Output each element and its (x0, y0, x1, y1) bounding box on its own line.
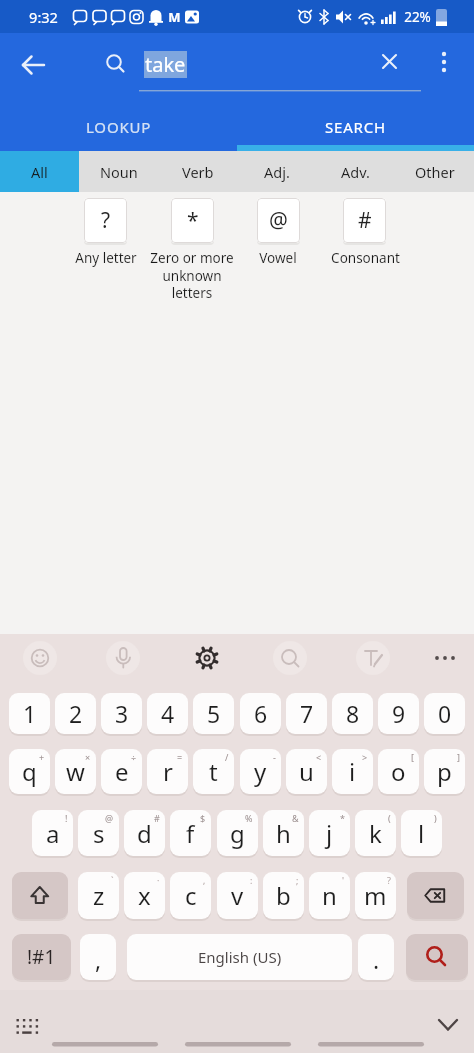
button[interactable]: English (US) (127, 934, 352, 980)
button[interactable]: y (240, 749, 281, 794)
staticText: 9:32 (29, 7, 58, 27)
staticText: SEARCH (325, 117, 386, 137)
staticText: + (39, 751, 45, 763)
button[interactable]: l (401, 810, 442, 856)
staticText: b (276, 879, 291, 912)
button[interactable]: m (355, 872, 396, 919)
staticText: e (115, 755, 129, 788)
staticText: x (138, 879, 151, 912)
button[interactable]: j (309, 810, 350, 856)
button[interactable] (351, 636, 395, 680)
button[interactable]: * (171, 198, 214, 243)
button[interactable]: 5 (193, 693, 234, 734)
button[interactable]: z (78, 872, 119, 919)
staticText: h (276, 817, 291, 850)
button[interactable]: p (424, 749, 465, 794)
button[interactable]: w (55, 749, 96, 794)
button[interactable]: u (286, 749, 327, 794)
button[interactable] (425, 40, 469, 84)
staticText: 6 (254, 698, 268, 729)
button[interactable]: take (140, 47, 200, 81)
button[interactable]: 0 (424, 693, 465, 734)
button[interactable]: 3 (101, 693, 142, 734)
button[interactable]: SEARCH (237, 103, 474, 151)
button[interactable]: g (217, 810, 258, 856)
button[interactable]: 9 (378, 693, 419, 734)
button[interactable]: . (358, 934, 394, 980)
staticText: Any letter (75, 249, 137, 267)
button[interactable]: v (217, 872, 258, 919)
button[interactable]: 4 (147, 693, 188, 734)
button[interactable]: b (263, 872, 304, 919)
button[interactable]: x (124, 872, 165, 919)
button[interactable]: @ (257, 198, 300, 243)
staticText: i (349, 755, 356, 788)
button[interactable] (6, 1010, 46, 1042)
button[interactable]: o (378, 749, 419, 794)
button[interactable]: a (32, 810, 73, 856)
staticText: t (209, 755, 218, 788)
button[interactable]: Verb (158, 151, 237, 192)
staticText: ? (101, 206, 111, 235)
button[interactable] (185, 636, 229, 680)
staticText: # (154, 812, 160, 824)
button[interactable]: Adv. (316, 151, 395, 192)
staticText: [ (411, 751, 414, 763)
button[interactable]: i (332, 749, 373, 794)
button[interactable] (406, 934, 468, 980)
button[interactable]: k (355, 810, 396, 856)
staticText: y (254, 755, 267, 788)
button[interactable]: 6 (240, 693, 281, 734)
button[interactable]: 8 (332, 693, 373, 734)
button[interactable]: 1 (9, 693, 50, 734)
button[interactable]: !#1 (12, 934, 71, 980)
button[interactable]: s (78, 810, 119, 856)
button[interactable]: f (170, 810, 211, 856)
staticText: · (157, 874, 160, 886)
staticText: s (93, 817, 105, 850)
button[interactable]: # (343, 198, 386, 243)
staticText: = (177, 751, 183, 763)
button[interactable] (407, 872, 464, 919)
button[interactable] (18, 636, 62, 680)
button[interactable]: ? (84, 198, 127, 243)
button[interactable]: t (193, 749, 234, 794)
button[interactable]: LOOKUP (0, 103, 237, 151)
staticText: p (437, 755, 452, 788)
staticText: , (95, 944, 102, 975)
button[interactable] (101, 636, 145, 680)
staticText: Zero or more unknown letters (150, 249, 234, 302)
button[interactable]: c (170, 872, 211, 919)
button[interactable]: q (9, 749, 50, 794)
button[interactable] (368, 40, 412, 84)
button[interactable]: All (0, 151, 79, 192)
staticText: All (31, 162, 48, 182)
button[interactable]: 2 (55, 693, 96, 734)
staticText: Noun (100, 162, 138, 182)
button[interactable]: , (80, 934, 116, 980)
staticText: 22% (404, 8, 431, 26)
button[interactable]: n (309, 872, 350, 919)
button[interactable] (423, 636, 467, 680)
staticText: * (340, 812, 345, 824)
staticText: !#1 (27, 944, 56, 970)
button[interactable]: h (263, 810, 304, 856)
staticText: ? (387, 874, 391, 886)
button[interactable] (11, 54, 55, 98)
button[interactable]: e (101, 749, 142, 794)
button[interactable] (430, 1010, 468, 1040)
staticText: 8 (346, 698, 360, 729)
staticText: ' (342, 874, 345, 886)
staticText: # (358, 206, 372, 235)
button[interactable]: Other (395, 151, 474, 192)
button[interactable]: Adj. (237, 151, 316, 192)
staticText: . (373, 944, 380, 975)
staticText: 0 (438, 698, 452, 729)
button[interactable] (12, 872, 68, 919)
button[interactable]: Noun (79, 151, 158, 192)
button[interactable]: d (124, 810, 165, 856)
button[interactable] (268, 636, 312, 680)
button[interactable]: 7 (286, 693, 327, 734)
staticText: r (163, 755, 173, 788)
button[interactable]: r (147, 749, 188, 794)
